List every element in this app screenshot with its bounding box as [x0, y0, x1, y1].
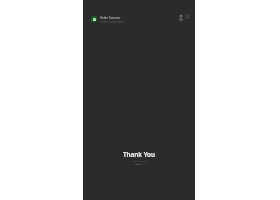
- staticText: order placed: [132, 159, 147, 162]
- staticText: #4512: [135, 162, 143, 165]
- button[interactable]: Account: [177, 12, 184, 20]
- staticText: order confirmed: [100, 20, 124, 24]
- button[interactable]: More options: [183, 12, 192, 20]
- staticText: Thank You: [123, 150, 156, 159]
- staticText: Order Success: [100, 16, 121, 20]
